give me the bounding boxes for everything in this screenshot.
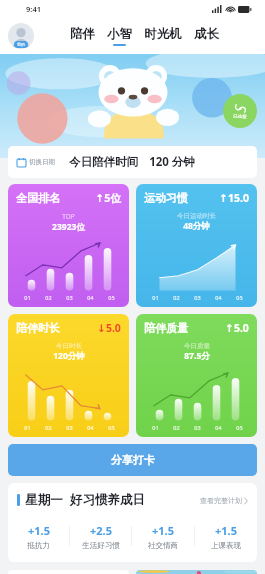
- staticText: ↓5.0: [97, 321, 121, 335]
- staticText: 今日陪伴时间: [69, 155, 138, 169]
- button[interactable]: 全国排名: [8, 184, 129, 307]
- staticText: 04: [87, 424, 94, 431]
- staticText: 87.5分: [184, 350, 210, 362]
- staticText: 今日时长: [56, 342, 82, 350]
- button[interactable]: 切换日期: [8, 146, 257, 178]
- staticText: 好习惯养成日: [70, 492, 145, 508]
- staticText: 9:41: [26, 4, 41, 14]
- staticText: 120 分钟: [149, 154, 195, 170]
- staticText: 时光机: [144, 26, 182, 42]
- staticText: 02: [45, 294, 52, 301]
- staticText: 03: [66, 424, 73, 431]
- button[interactable]: 查看完整计划: [200, 496, 248, 505]
- button[interactable]: Profile avatar: [8, 23, 34, 49]
- staticText: 切换日期: [29, 158, 55, 166]
- staticText: 03: [66, 294, 73, 301]
- staticText: 全国排名: [16, 191, 60, 205]
- staticText: ↑15.0: [219, 191, 249, 205]
- staticText: 01: [152, 294, 159, 301]
- staticText: 成长: [194, 26, 219, 42]
- staticText: +1.5: [28, 523, 50, 538]
- button[interactable]: +2.5: [70, 519, 131, 553]
- staticText: +2.5: [90, 523, 112, 538]
- staticText: 抵抗力: [27, 541, 50, 550]
- staticText: 02: [45, 424, 52, 431]
- button[interactable]: 时光机: [138, 24, 188, 48]
- button[interactable]: 小智: [101, 24, 138, 48]
- staticText: 02: [173, 424, 180, 431]
- staticText: ↑5.0: [225, 321, 249, 335]
- staticText: 陪伴: [70, 26, 95, 42]
- staticText: 陪伴质量: [144, 321, 188, 335]
- staticText: TOP: [62, 212, 75, 221]
- staticText: 分享打卡: [111, 453, 155, 467]
- staticText: 运动习惯: [144, 191, 188, 205]
- button[interactable]: +1.5: [195, 519, 257, 553]
- staticText: 05: [236, 424, 243, 431]
- staticText: 05: [108, 294, 115, 301]
- staticText: 已连接: [233, 114, 247, 120]
- staticText: 小智: [107, 26, 132, 42]
- staticText: 今日质量: [184, 342, 210, 350]
- button[interactable]: 陪伴质量: [136, 314, 257, 437]
- staticText: 社交情商: [148, 541, 178, 550]
- staticText: +1.5: [152, 523, 174, 538]
- staticText: 120分钟: [53, 350, 85, 362]
- staticText: 查看完整计划: [200, 496, 242, 505]
- staticText: 04: [215, 424, 222, 431]
- staticText: 陪伴时长: [16, 321, 60, 335]
- staticText: 05: [236, 294, 243, 301]
- staticText: 星期一: [25, 492, 63, 508]
- staticText: 23923位: [52, 221, 85, 233]
- staticText: 生活好习惯: [82, 541, 120, 550]
- staticText: 今日运动时长: [177, 212, 216, 220]
- button[interactable]: 陪伴时长: [8, 314, 129, 437]
- staticText: 48分钟: [183, 220, 210, 232]
- staticText: 01: [24, 294, 31, 301]
- staticText: 01: [24, 424, 31, 431]
- staticText: 04: [215, 294, 222, 301]
- button[interactable]: 分享打卡: [8, 444, 257, 476]
- staticText: 02: [173, 294, 180, 301]
- button[interactable]: +1.5: [132, 519, 194, 553]
- button[interactable]: 成长: [188, 24, 225, 48]
- staticText: 01: [152, 424, 159, 431]
- staticText: 03: [194, 424, 201, 431]
- button[interactable]: 陪伴: [64, 24, 101, 48]
- button[interactable]: [136, 570, 257, 574]
- button[interactable]: +1.5: [8, 519, 69, 553]
- staticText: 我的: [17, 42, 25, 47]
- staticText: +1.5: [215, 523, 237, 538]
- staticText: 04: [87, 294, 94, 301]
- staticText: 上课表现: [211, 541, 241, 550]
- button[interactable]: 已连接: [223, 94, 257, 128]
- staticText: ↑5位: [95, 191, 121, 205]
- staticText: 05: [108, 424, 115, 431]
- button[interactable]: 运动习惯: [136, 184, 257, 307]
- staticText: 03: [194, 294, 201, 301]
